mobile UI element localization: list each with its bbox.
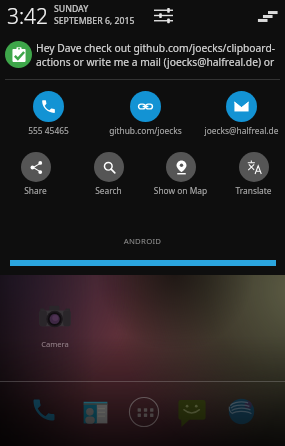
staticText: Search <box>73 185 144 196</box>
button[interactable]: Signal strength <box>256 6 280 30</box>
button[interactable]: Camera <box>26 301 84 349</box>
staticText: Translate <box>218 185 285 196</box>
staticText: SUNDAY <box>54 3 89 15</box>
button[interactable]: Browser <box>225 395 258 428</box>
staticText: actions or write me a mail (joecks@halfr… <box>36 55 275 69</box>
button[interactable]: Share <box>0 152 71 196</box>
staticText: joecks@halfreal.de <box>194 125 285 136</box>
button[interactable]: Translate <box>218 152 285 196</box>
button[interactable]: Messaging <box>175 395 209 429</box>
staticText: Hey Dave check out github.com/joecks/cli… <box>36 41 276 55</box>
button[interactable]: Phone <box>30 396 58 424</box>
button[interactable]: joecks@halfreal.de <box>194 91 285 136</box>
staticText: Camera <box>26 339 84 349</box>
button[interactable]: 555 45465 <box>1 91 96 136</box>
button[interactable]: Show on Map <box>145 152 216 196</box>
staticText: 3:42 <box>7 2 49 31</box>
button[interactable]: ANDROID <box>0 236 285 275</box>
button[interactable]: Hey Dave check out github.com/joecks/cli… <box>0 33 285 78</box>
staticText: Show on Map <box>145 185 216 196</box>
button[interactable]: github.com/joecks <box>98 91 193 136</box>
button[interactable]: Quick settings <box>151 5 176 30</box>
button[interactable]: All apps <box>128 396 160 428</box>
staticText: 555 45465 <box>1 125 96 136</box>
staticText: ANDROID <box>0 236 285 247</box>
staticText: SEPTEMBER 6, 2015 <box>54 15 135 27</box>
staticText: github.com/joecks <box>98 125 193 136</box>
staticText: Share <box>0 185 71 196</box>
button[interactable]: People <box>79 397 112 430</box>
button[interactable]: Search <box>73 152 144 196</box>
